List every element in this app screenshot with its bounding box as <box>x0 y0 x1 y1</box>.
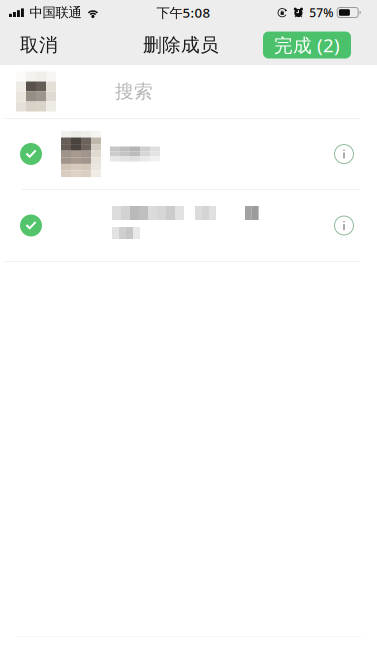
staticText: 57% <box>309 4 333 20</box>
staticText: 删除成员 <box>143 33 219 56</box>
button[interactable]: 完成 (2) <box>263 31 351 58</box>
staticText: 搜索 <box>115 80 153 103</box>
button[interactable]: Member info <box>333 214 377 236</box>
staticText: 取消 <box>20 33 58 56</box>
staticText: 中国联通 <box>29 4 81 21</box>
button[interactable]: Member info <box>333 143 377 165</box>
button[interactable]: 取消 <box>0 25 74 65</box>
staticText: 下午5:08 <box>156 4 210 21</box>
staticText: 完成 (2) <box>274 33 340 57</box>
